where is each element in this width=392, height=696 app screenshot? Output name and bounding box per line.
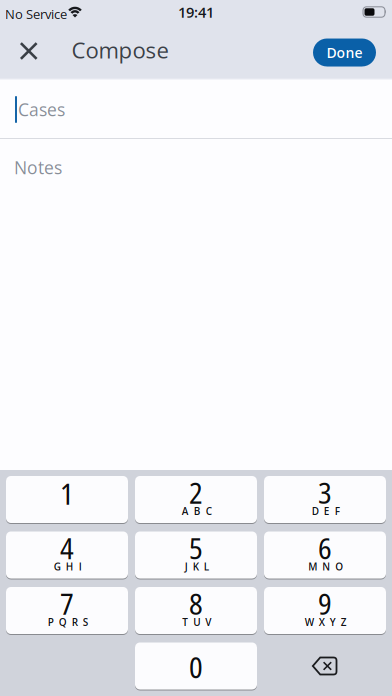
button[interactable]: 0 <box>135 642 257 689</box>
button[interactable]: Close <box>0 42 37 60</box>
staticText: M N O <box>308 560 343 573</box>
button[interactable]: 5 <box>135 531 257 578</box>
staticText: A B C <box>182 504 212 518</box>
staticText: 6 <box>318 528 332 568</box>
staticText: Done <box>326 43 362 62</box>
button[interactable]: 4 <box>6 531 128 578</box>
button[interactable]: 7 <box>6 587 128 634</box>
staticText: Compose <box>71 35 168 65</box>
staticText: D E F <box>312 504 340 518</box>
staticText: 4 <box>60 528 74 568</box>
button[interactable]: Done <box>313 38 376 66</box>
button[interactable]: Delete <box>264 642 386 689</box>
button[interactable]: 2 <box>135 476 257 523</box>
staticText: 9 <box>318 584 332 623</box>
button[interactable]: 1 <box>6 476 128 523</box>
staticText: J K L <box>185 560 209 573</box>
staticText: Notes <box>14 156 62 179</box>
staticText: 5 <box>189 528 203 568</box>
staticText: 2 <box>189 473 203 512</box>
staticText: G H I <box>54 560 82 573</box>
staticText: No Service <box>5 5 67 23</box>
staticText: Cases <box>18 98 65 121</box>
staticText: 19:41 <box>178 2 214 22</box>
staticText: W X Y Z <box>305 615 347 629</box>
button[interactable]: Notes <box>0 154 392 181</box>
staticText: 7 <box>60 584 74 623</box>
staticText: 3 <box>318 473 332 512</box>
staticText: 0 <box>189 647 203 687</box>
button[interactable]: 3 <box>264 476 386 523</box>
staticText: T U V <box>182 615 211 629</box>
staticText: 1 <box>60 474 74 513</box>
button[interactable]: Cases <box>0 96 392 123</box>
button[interactable]: 6 <box>264 531 386 578</box>
button[interactable]: 8 <box>135 587 257 634</box>
staticText: P Q R S <box>48 615 88 629</box>
staticText: 8 <box>189 584 203 623</box>
button[interactable]: 9 <box>264 587 386 634</box>
